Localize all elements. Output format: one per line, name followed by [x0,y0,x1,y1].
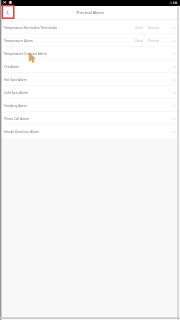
staticText: Thermal [148,26,160,30]
button[interactable]: Smoking Alarm [0,99,180,112]
staticText: Fire Alarm [4,65,20,69]
button[interactable]: Hot Spot Alarm [0,73,180,86]
staticText: Temperature Contrast Alarm [4,52,47,56]
staticText: Smoke Detection Alarm [4,130,40,134]
button[interactable]: Temperature Contrast Alarm [0,47,180,60]
button[interactable]: Temperature Alarm [0,34,180,47]
staticText: Temperature Not within Thresholds [4,26,58,30]
staticText: Temperature Alarm [4,39,34,43]
staticText: Visual [135,26,144,30]
button[interactable]: Cold Spot Alarm [0,86,180,99]
button[interactable]: Photo Cell Alarm [0,112,180,125]
button[interactable]: Back [2,7,13,18]
staticText: Cold Spot Alarm [4,91,29,95]
staticText: Visual [135,39,144,43]
staticText: Thermal [148,39,160,43]
staticText: Smoking Alarm [4,104,27,108]
button[interactable]: Fire Alarm [0,60,180,73]
button[interactable]: Temperature Not within Thresholds [0,21,180,34]
staticText: Photo Cell Alarm [4,117,29,121]
button[interactable]: Smoke Detection Alarm [0,125,180,138]
staticText: Hot Spot Alarm [4,78,27,82]
staticText: Thermal Alarm [76,10,104,15]
